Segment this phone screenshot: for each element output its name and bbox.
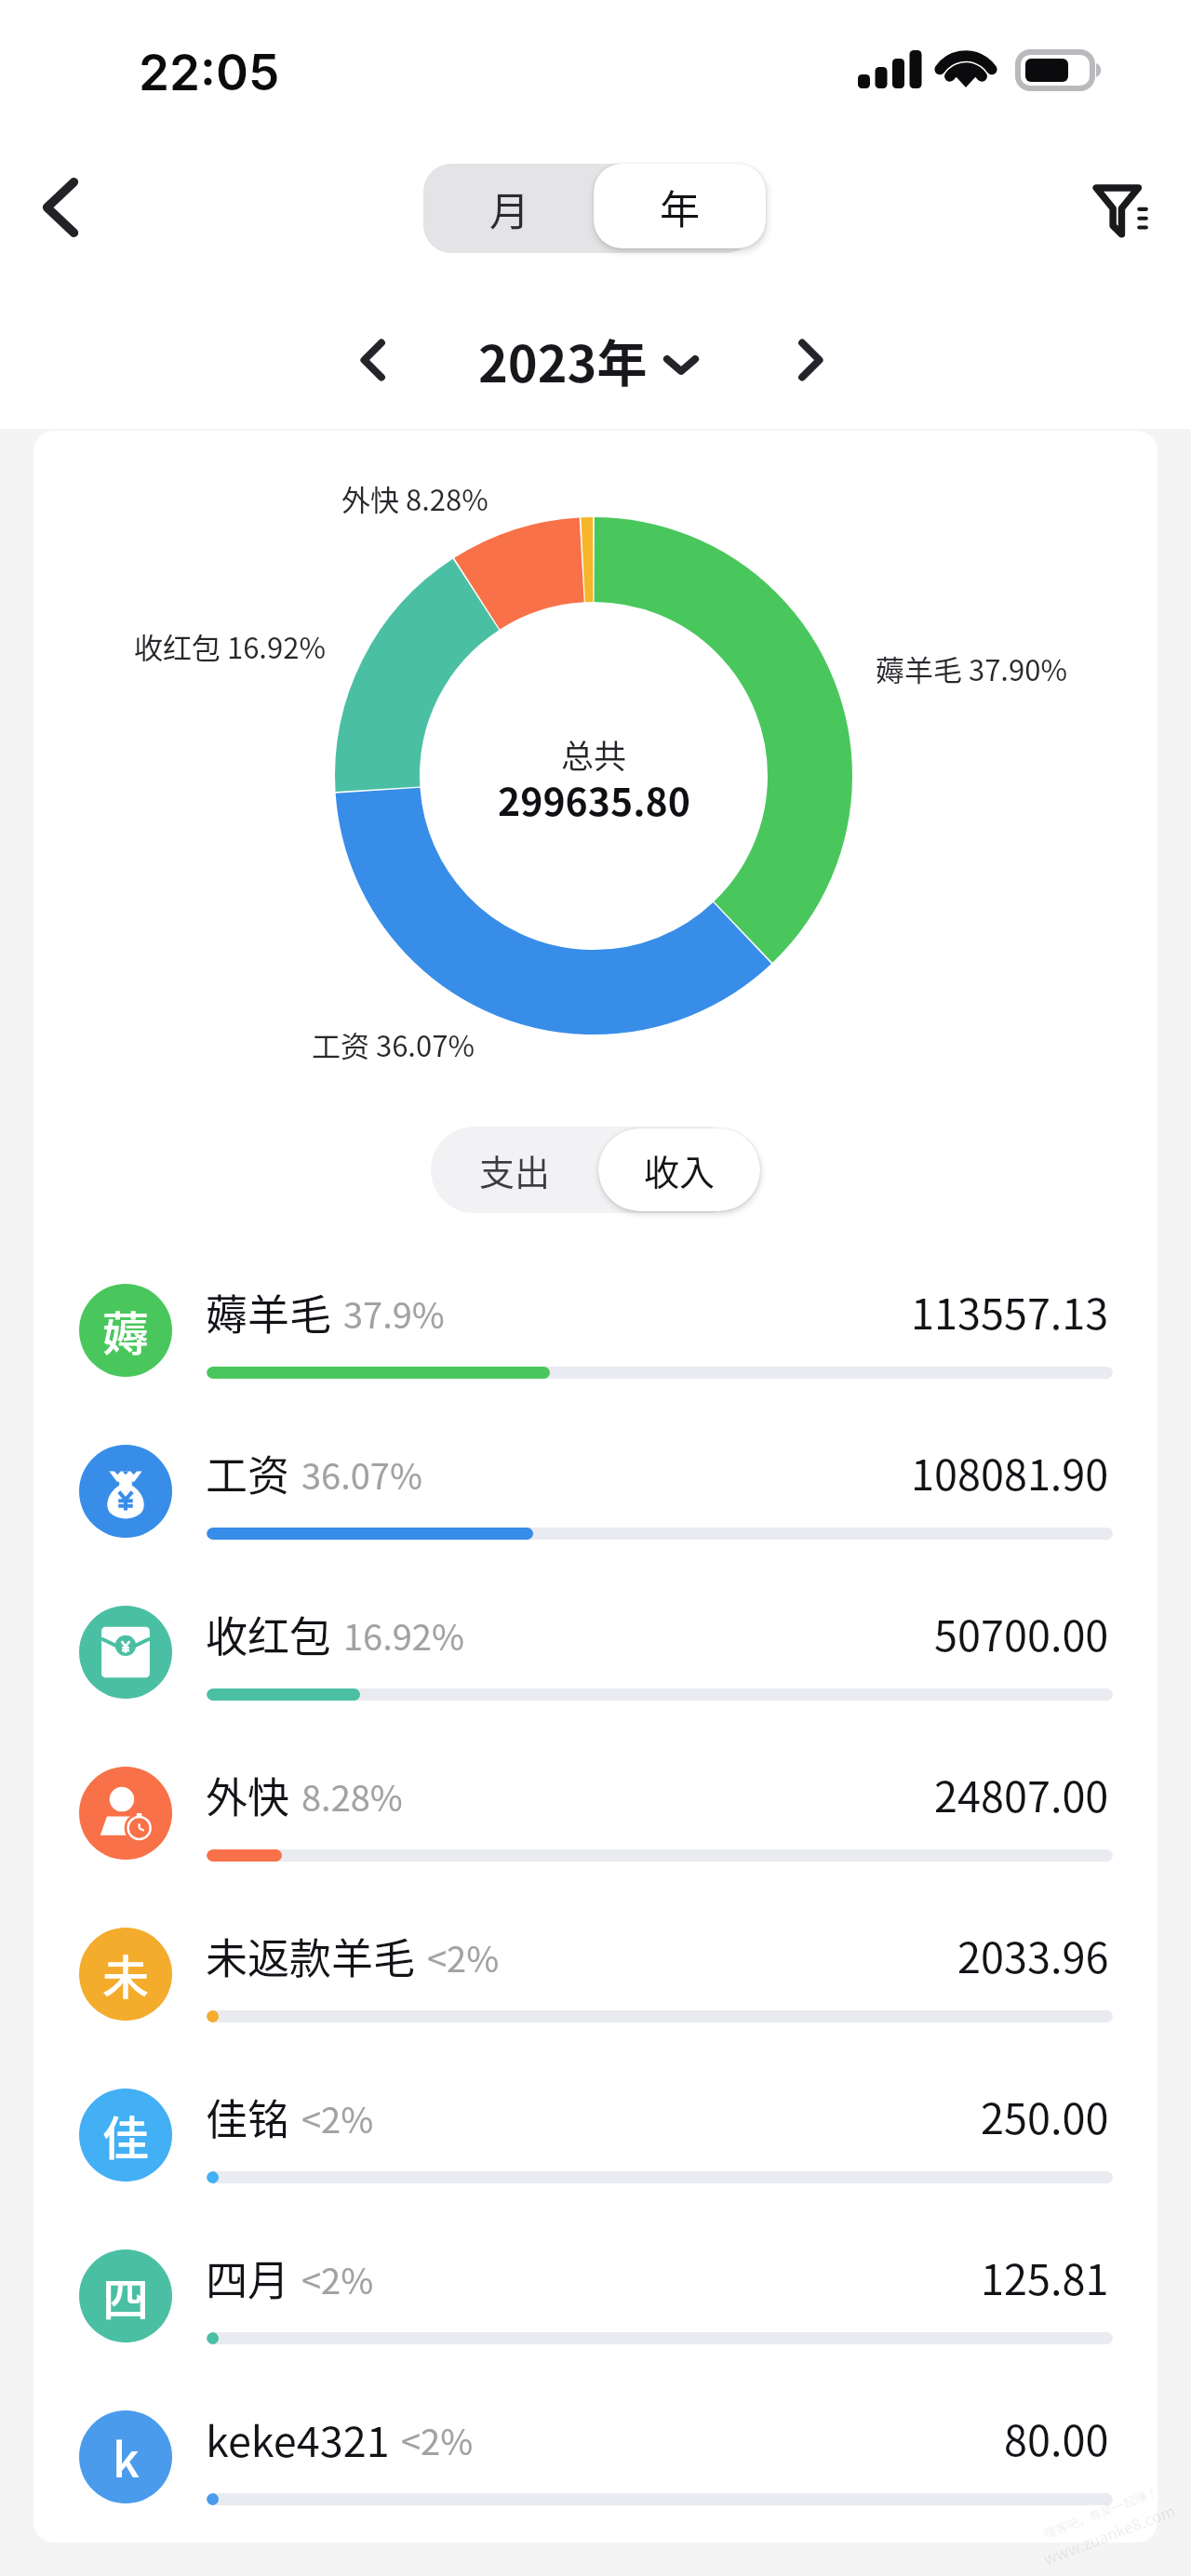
button[interactable]: 2023年 bbox=[478, 324, 698, 396]
staticText: 2023年 bbox=[478, 324, 648, 396]
button[interactable]: 收红包 bbox=[0, 1571, 1191, 1732]
button[interactable]: 薅 bbox=[0, 1249, 1191, 1410]
button[interactable]: k bbox=[0, 2376, 1191, 2537]
staticText: <2% bbox=[301, 2092, 374, 2143]
button[interactable]: 月 bbox=[423, 164, 595, 253]
staticText: 收入 bbox=[644, 1144, 716, 1195]
staticText: 22:05 bbox=[139, 43, 280, 102]
button[interactable]: 工资 bbox=[0, 1410, 1191, 1571]
button[interactable]: 收入 bbox=[598, 1128, 760, 1211]
button[interactable]: Filter bbox=[1079, 166, 1165, 251]
staticText: 四月 bbox=[206, 2248, 290, 2308]
staticText: 125.81 bbox=[981, 2247, 1109, 2307]
staticText: 外快 8.28% bbox=[341, 477, 488, 519]
button[interactable]: 佳 bbox=[0, 2054, 1191, 2215]
staticText: 收红包 bbox=[206, 1604, 332, 1664]
staticText: 80.00 bbox=[1004, 2408, 1109, 2468]
staticText: keke4321 bbox=[206, 2409, 390, 2469]
staticText: 四 bbox=[102, 2262, 149, 2329]
staticText: 250.00 bbox=[981, 2086, 1109, 2146]
staticText: 佳 bbox=[102, 2102, 149, 2169]
button[interactable]: 支出 bbox=[431, 1127, 598, 1213]
staticText: 16.92% bbox=[343, 1609, 464, 1661]
staticText: 薅羊毛 bbox=[206, 1282, 332, 1342]
staticText: k bbox=[113, 2423, 140, 2490]
staticText: <2% bbox=[301, 2253, 374, 2304]
staticText: 8.28% bbox=[301, 1770, 403, 1822]
staticText: 收红包 16.92% bbox=[134, 625, 326, 667]
staticText: 总共 bbox=[561, 730, 627, 778]
staticText: 佳铭 bbox=[206, 2087, 290, 2147]
staticText: 薅羊毛 37.90% bbox=[876, 647, 1067, 689]
staticText: 年 bbox=[660, 178, 700, 235]
staticText: 赚客吧，有奖一起赚！ bbox=[1041, 2482, 1161, 2542]
button[interactable]: Next year bbox=[769, 319, 850, 401]
button[interactable]: 外快 bbox=[0, 1732, 1191, 1893]
staticText: www.zuanke8.com bbox=[1040, 2498, 1178, 2570]
staticText: 月 bbox=[489, 180, 529, 237]
staticText: 36.07% bbox=[301, 1448, 422, 1500]
staticText: <2% bbox=[401, 2414, 474, 2465]
button[interactable]: 四 bbox=[0, 2215, 1191, 2376]
staticText: 50700.00 bbox=[934, 1603, 1109, 1663]
staticText: 24807.00 bbox=[934, 1764, 1109, 1824]
button[interactable]: 未 bbox=[0, 1893, 1191, 2054]
staticText: 2033.96 bbox=[957, 1925, 1109, 1985]
staticText: 108081.90 bbox=[911, 1442, 1109, 1502]
staticText: 外快 bbox=[206, 1765, 290, 1825]
staticText: 未 bbox=[102, 1941, 149, 2008]
staticText: 工资 bbox=[206, 1443, 290, 1503]
staticText: 支出 bbox=[479, 1144, 551, 1195]
staticText: 薅 bbox=[102, 1297, 149, 1364]
staticText: 113557.13 bbox=[911, 1281, 1109, 1341]
button[interactable]: Back bbox=[18, 165, 103, 250]
button[interactable]: Previous year bbox=[333, 319, 415, 401]
staticText: 37.9% bbox=[343, 1288, 445, 1339]
staticText: 299635.80 bbox=[498, 771, 690, 826]
staticText: 工资 36.07% bbox=[312, 1023, 475, 1065]
staticText: 未返款羊毛 bbox=[206, 1926, 416, 1986]
button[interactable]: 年 bbox=[594, 164, 766, 248]
staticText: <2% bbox=[427, 1931, 500, 1982]
